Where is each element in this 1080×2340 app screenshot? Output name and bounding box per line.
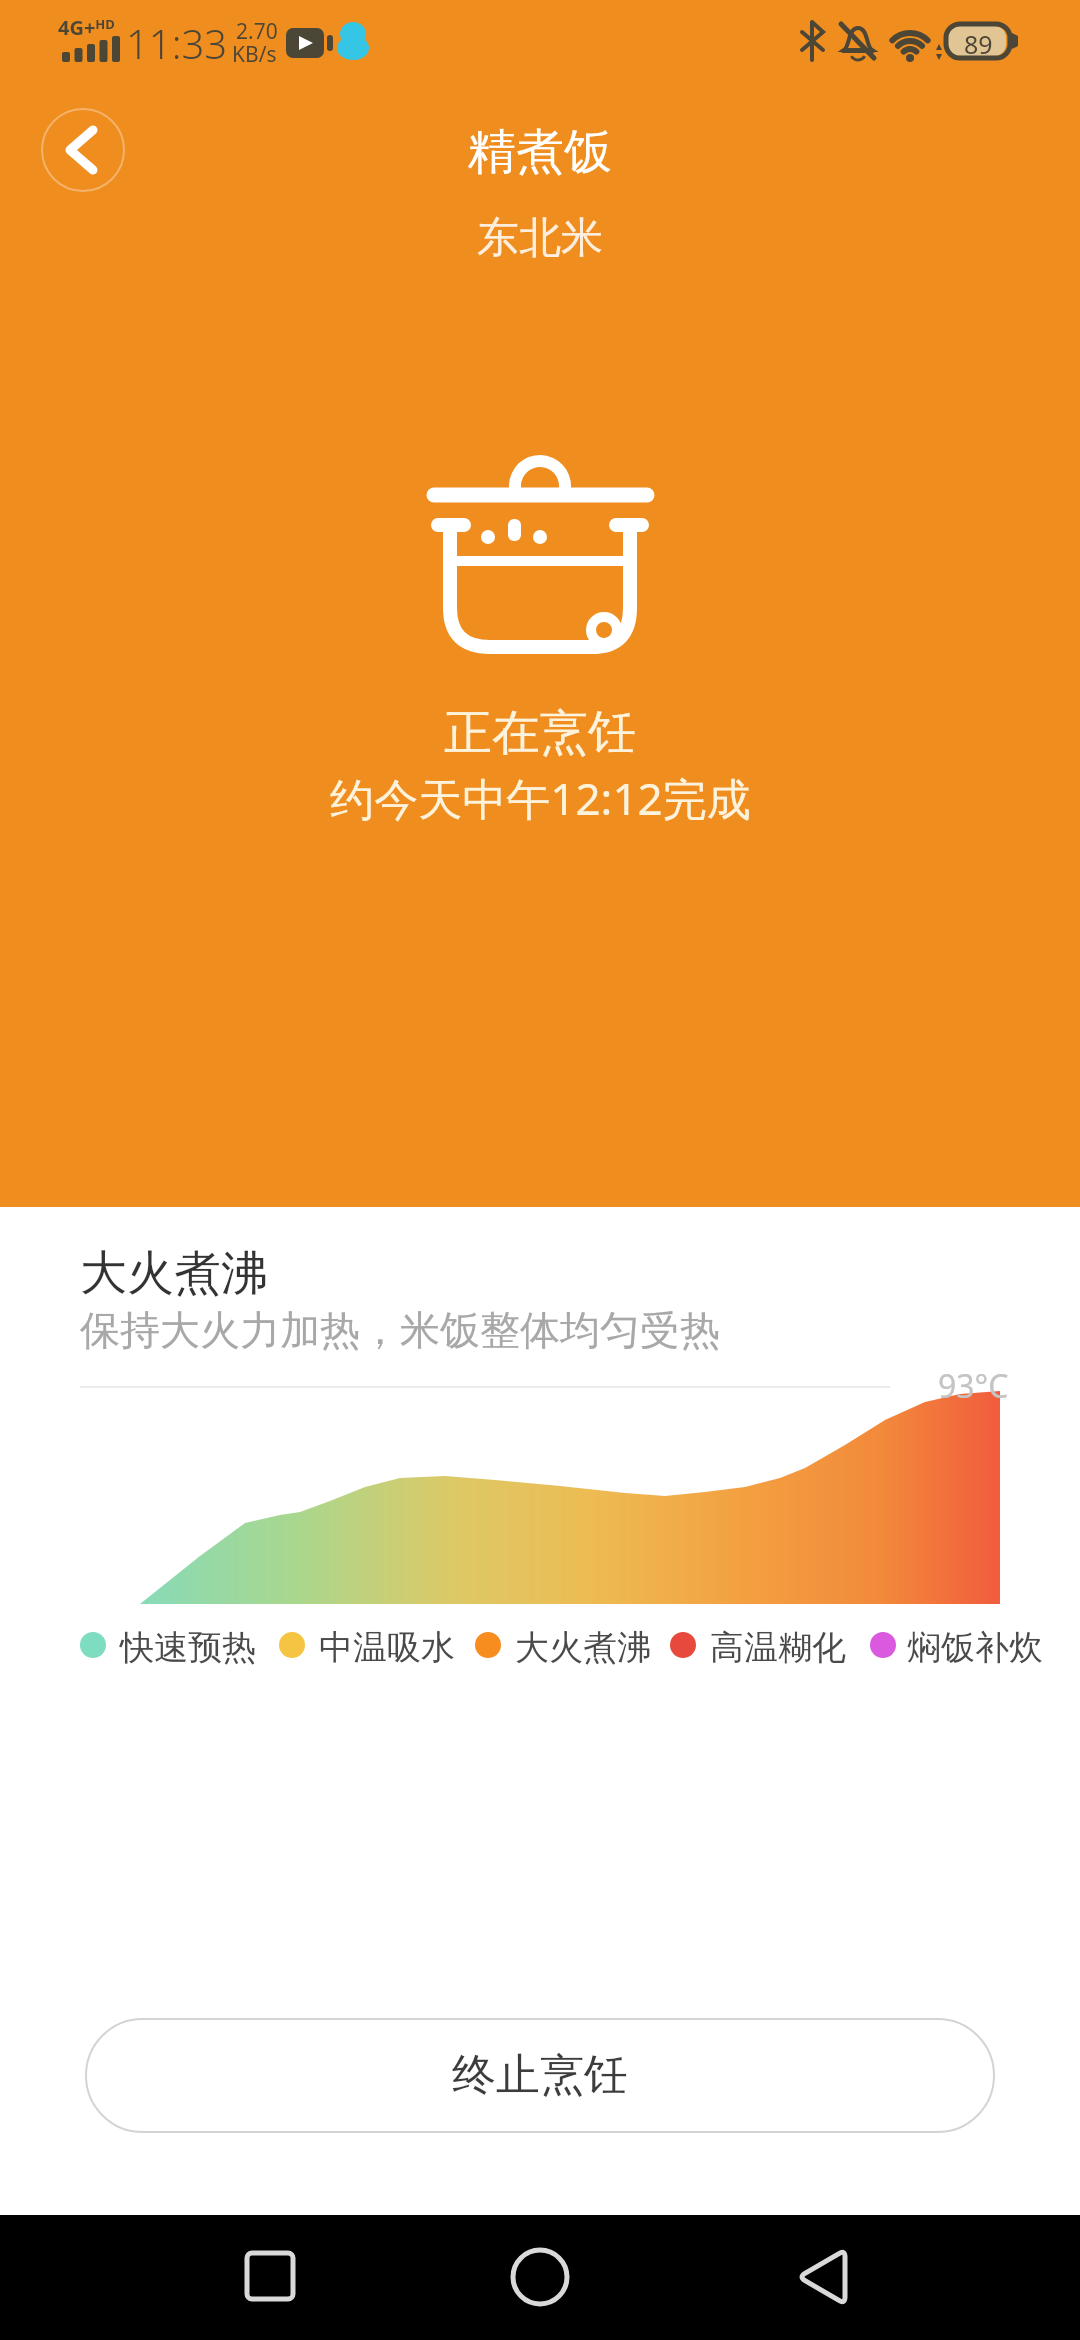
staticText: 终止烹饪 bbox=[452, 2048, 628, 2103]
staticText: 2.70 bbox=[236, 17, 278, 46]
staticText: 快速预热 bbox=[120, 1626, 256, 1669]
button[interactable] bbox=[760, 2225, 880, 2330]
staticText: 高温糊化 bbox=[710, 1626, 846, 1669]
button[interactable] bbox=[41, 108, 125, 192]
button[interactable] bbox=[480, 2225, 600, 2330]
staticText: 大火煮沸 bbox=[515, 1626, 651, 1669]
staticText: 焖饭补炊 bbox=[907, 1626, 1043, 1669]
staticText: 4G+ᴴᴰ bbox=[58, 14, 115, 41]
staticText: 93°C bbox=[938, 1364, 1009, 1408]
staticText: 约今天中午12:12完成 bbox=[330, 768, 751, 828]
staticText: 精煮饭 bbox=[468, 122, 612, 182]
staticText: 东北米 bbox=[477, 212, 603, 265]
staticText: 11:33 bbox=[126, 16, 228, 70]
button[interactable]: 终止烹饪 bbox=[85, 2018, 995, 2133]
staticText: 大火煮沸 bbox=[80, 1244, 268, 1303]
staticText: 89 bbox=[964, 27, 993, 61]
staticText: 保持大火力加热，米饭整体均匀受热 bbox=[80, 1305, 720, 1355]
staticText: KB/s bbox=[232, 40, 277, 69]
button[interactable] bbox=[210, 2225, 330, 2330]
staticText: 中温吸水 bbox=[319, 1626, 455, 1669]
staticText: 正在烹饪 bbox=[444, 703, 636, 763]
